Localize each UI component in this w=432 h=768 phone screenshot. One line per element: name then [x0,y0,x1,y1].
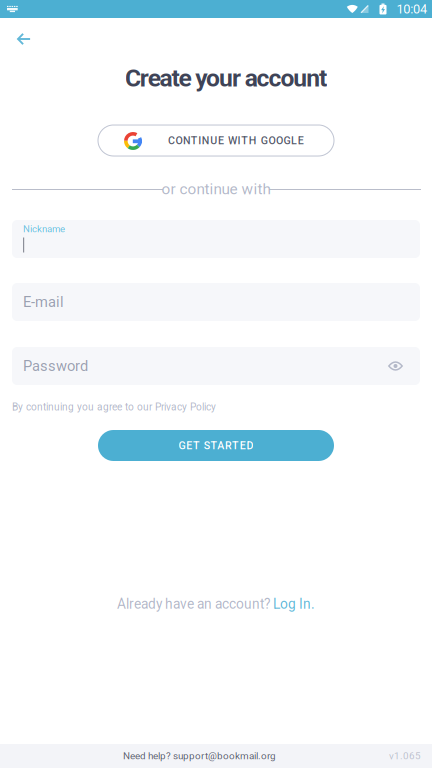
staticText: support@bookmail.org [173,750,276,762]
staticText: Log In. [273,596,315,612]
button[interactable]: support@bookmail.org [173,750,276,762]
button[interactable]: Privacy Policy [155,401,216,413]
staticText: or continue with [161,180,270,198]
staticText: Create your account [125,63,327,92]
staticText: CONTINUE WITH GOOGLE [168,134,304,147]
button[interactable]: Back [5,26,43,52]
staticText: Password [23,357,88,375]
staticText: By continuing you agree to our [12,401,155,413]
staticText: Privacy Policy [155,401,216,413]
staticText: E-mail [23,293,64,311]
staticText: GET STARTED [178,439,253,452]
button[interactable]: CONTINUE WITH GOOGLE [98,125,334,156]
button[interactable]: Log In. [273,596,315,612]
staticText: v1.065 [389,750,421,762]
button[interactable]: Nickname [12,220,420,258]
staticText: Need help? [123,750,173,762]
staticText: 10:04 [396,1,427,16]
button[interactable]: Password [12,347,420,385]
staticText: Nickname [23,223,65,234]
button[interactable]: GET STARTED [98,430,334,461]
button[interactable]: E-mail [12,283,420,321]
staticText: Already have an account? [117,596,273,612]
